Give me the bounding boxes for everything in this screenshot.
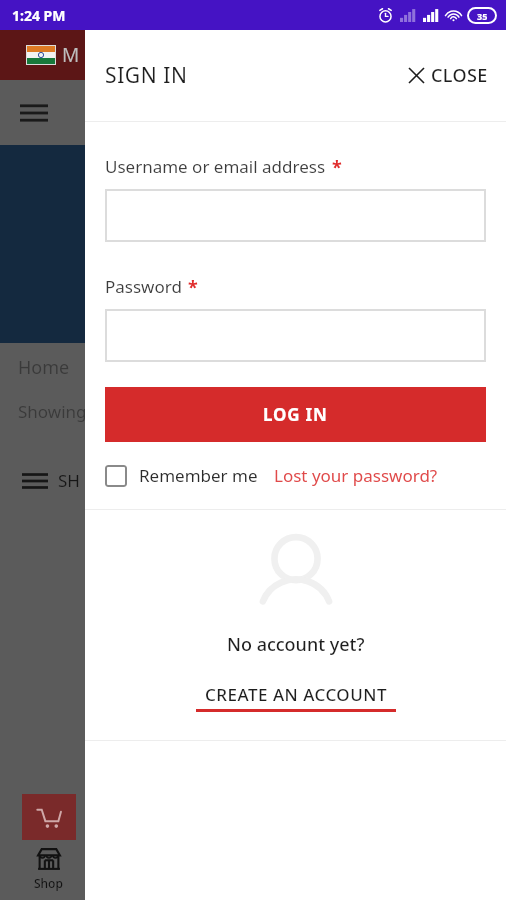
staticText: No account yet? <box>227 632 365 657</box>
button[interactable]: LOG IN <box>105 387 486 442</box>
staticText: CLOSE <box>431 63 488 88</box>
staticText: 1:24 PM <box>12 6 66 25</box>
staticText: 35 <box>477 10 488 22</box>
button[interactable]: Lost your password? <box>274 464 438 487</box>
staticText: Shop <box>34 875 63 891</box>
staticText: M <box>62 42 80 68</box>
button[interactable]: Shop <box>34 846 63 891</box>
staticText: Username or email address <box>105 155 326 178</box>
staticText: Password <box>105 275 182 298</box>
button[interactable] <box>105 309 486 362</box>
staticText: SH <box>58 469 80 492</box>
button[interactable]: Cart <box>22 794 76 840</box>
button[interactable]: CREATE AN ACCOUNT <box>196 683 396 712</box>
button[interactable]: CLOSE <box>409 63 488 88</box>
staticText: Home <box>18 355 70 380</box>
staticText: LOG IN <box>263 403 328 426</box>
staticText: SIGN IN <box>105 61 188 90</box>
staticText: Showing <box>18 400 87 423</box>
staticText: * <box>188 275 198 300</box>
staticText: * <box>332 155 342 180</box>
staticText: CREATE AN ACCOUNT <box>205 683 387 706</box>
button[interactable]: Remember me <box>105 464 258 487</box>
button[interactable] <box>105 189 486 242</box>
staticText: Remember me <box>139 464 258 487</box>
